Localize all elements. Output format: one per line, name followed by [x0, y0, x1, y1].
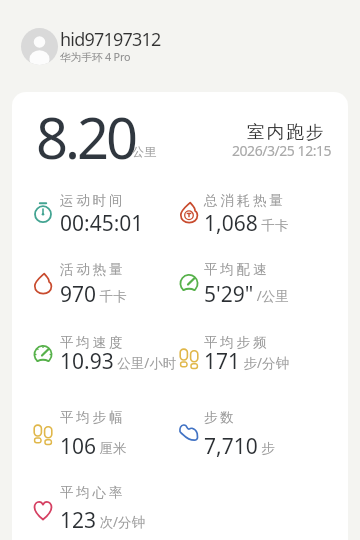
button[interactable]: [33, 499, 183, 540]
button[interactable]: [20, 28, 220, 68]
button[interactable]: [33, 201, 183, 247]
staticText: 2026/3/25 12:15: [232, 141, 332, 160]
staticText: 平均配速: [204, 261, 270, 278]
staticText: 00:45:01: [60, 209, 144, 238]
staticText: 970 千卡: [60, 280, 127, 309]
button[interactable]: [179, 272, 329, 318]
staticText: 7,710 步: [204, 432, 275, 461]
staticText: 平均心率: [60, 484, 126, 501]
button[interactable]: [179, 346, 329, 392]
staticText: hid97197312: [60, 27, 161, 52]
staticText: 公里: [132, 144, 156, 159]
button[interactable]: [179, 422, 329, 468]
staticText: 106 厘米: [60, 432, 127, 461]
staticText: 总消耗热量: [204, 192, 286, 209]
staticText: 123 次/分钟: [60, 506, 146, 535]
staticText: 运动时间: [60, 192, 126, 209]
staticText: 8.20: [36, 99, 136, 175]
staticText: 平均步幅: [60, 409, 126, 426]
button[interactable]: [33, 343, 183, 389]
staticText: 171 步/分钟: [204, 347, 290, 376]
staticText: 5'29" /公里: [204, 280, 289, 309]
button[interactable]: [33, 422, 183, 468]
staticText: 平均步频: [204, 334, 270, 351]
staticText: 1,068 千卡: [204, 209, 289, 238]
staticText: 华为手环 4 Pro: [60, 49, 131, 64]
button[interactable]: [33, 272, 183, 318]
staticText: 室内跑步: [247, 121, 326, 143]
staticText: 平均速度: [60, 334, 126, 351]
button[interactable]: [179, 201, 329, 247]
staticText: 活动热量: [60, 261, 126, 278]
staticText: 步数: [204, 409, 237, 426]
staticText: 10.93 公里/小时: [60, 347, 177, 376]
